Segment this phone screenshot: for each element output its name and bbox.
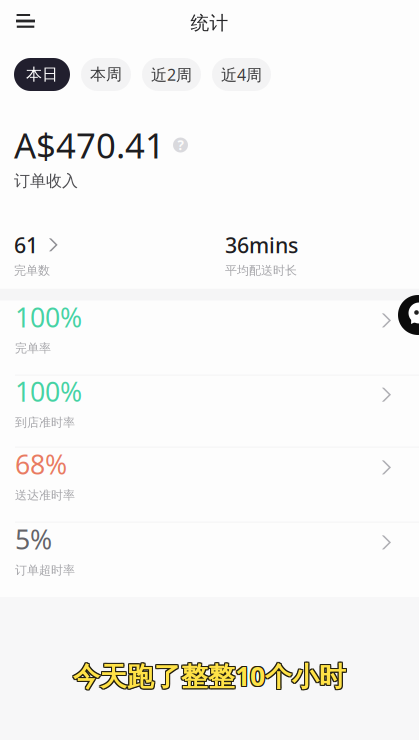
button[interactable]: 100% bbox=[0, 376, 419, 447]
staticText: 今天跑了整整10个小时 bbox=[74, 657, 347, 692]
staticText: 近4周 bbox=[221, 64, 262, 85]
staticText: 到店准时率 bbox=[15, 415, 75, 430]
staticText: 61 bbox=[14, 231, 38, 259]
staticText: 订单超时率 bbox=[15, 563, 75, 577]
staticText: 统计 bbox=[190, 11, 228, 34]
staticText: 今天跑了整整10个小时 bbox=[73, 657, 346, 692]
staticText: 今天跑了整整10个小时 bbox=[74, 659, 347, 694]
staticText: A$470.41 bbox=[14, 122, 165, 168]
staticText: 本周 bbox=[90, 65, 122, 84]
staticText: 今天跑了整整10个小时 bbox=[73, 659, 346, 694]
button[interactable]: 近2周 bbox=[142, 58, 201, 91]
staticText: 100% bbox=[15, 299, 82, 335]
staticText: 近2周 bbox=[151, 64, 192, 85]
staticText: 100% bbox=[15, 374, 82, 409]
button[interactable]: 68% bbox=[0, 448, 419, 522]
staticText: 今天跑了整整10个小时 bbox=[72, 658, 345, 693]
staticText: 今天跑了整整10个小时 bbox=[74, 658, 347, 693]
button[interactable]: 61 bbox=[14, 231, 225, 278]
staticText: 订单收入 bbox=[14, 171, 78, 191]
button[interactable]: 100% bbox=[0, 301, 419, 375]
button[interactable]: 近4周 bbox=[212, 58, 271, 91]
button[interactable]: 本周 bbox=[81, 58, 131, 91]
staticText: 本日 bbox=[26, 65, 58, 84]
button[interactable]: 本日 bbox=[14, 58, 70, 91]
staticText: 完单数 bbox=[14, 263, 50, 278]
staticText: 今天跑了整整10个小时 bbox=[72, 657, 345, 692]
staticText: 送达准时率 bbox=[15, 488, 75, 502]
staticText: 68% bbox=[15, 446, 67, 482]
staticText: 5% bbox=[15, 521, 52, 557]
staticText: 平均配送时长 bbox=[225, 263, 297, 278]
staticText: 今天跑了整整10个小时 bbox=[73, 658, 346, 693]
staticText: 36mins bbox=[225, 231, 298, 259]
staticText: 今天跑了整整10个小时 bbox=[72, 659, 345, 694]
staticText: 完单率 bbox=[15, 341, 51, 355]
button[interactable]: Menu bbox=[0, 4, 49, 42]
button[interactable]: Help bbox=[173, 137, 188, 152]
button[interactable]: 5% bbox=[0, 523, 419, 597]
staticText: ? bbox=[177, 136, 183, 154]
